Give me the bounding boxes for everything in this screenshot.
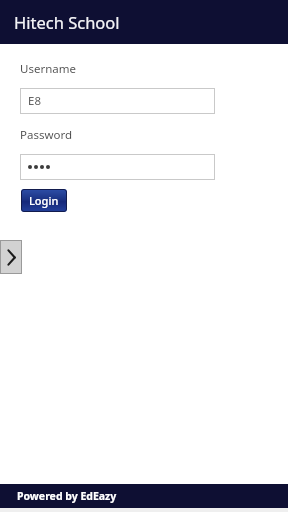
staticText: Hitech School bbox=[14, 11, 120, 33]
staticText: Login bbox=[29, 193, 59, 208]
staticText: Username bbox=[20, 61, 76, 77]
button[interactable]: Open drawer bbox=[0, 240, 22, 274]
staticText: E8 bbox=[28, 93, 41, 109]
staticText: Password bbox=[20, 127, 73, 143]
button[interactable] bbox=[20, 154, 215, 180]
staticText: Powered by EdEazy bbox=[17, 489, 117, 503]
button[interactable]: Login bbox=[21, 189, 67, 212]
button[interactable]: E8 bbox=[20, 88, 215, 114]
